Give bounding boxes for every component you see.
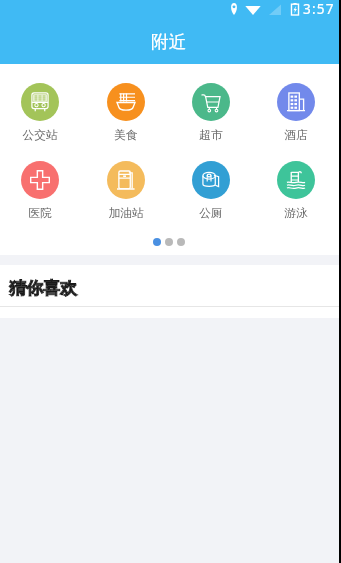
staticText: 游泳 (284, 206, 308, 221)
staticText: 酒店 (284, 128, 308, 143)
button[interactable]: 医院 (0, 161, 83, 221)
staticText: 加油站 (108, 206, 144, 221)
button[interactable]: Page 3 (177, 238, 185, 246)
button[interactable]: Page 2 (165, 238, 173, 246)
staticText: 医院 (28, 206, 52, 221)
staticText: 超市 (199, 128, 223, 143)
button[interactable]: 公交站 (0, 83, 83, 143)
button[interactable]: 公厕 (168, 161, 253, 221)
button[interactable]: 酒店 (253, 83, 338, 143)
staticText: 公交站 (22, 128, 58, 143)
button[interactable]: 美食 (83, 83, 168, 143)
button[interactable]: 游泳 (253, 161, 338, 221)
staticText: 猜你喜欢 (9, 278, 77, 299)
staticText: 3:57 (303, 0, 335, 18)
staticText: 猜你喜欢 (9, 278, 77, 299)
button[interactable]: 加油站 (83, 161, 168, 221)
button[interactable]: 超市 (168, 83, 253, 143)
staticText: 美食 (114, 128, 138, 143)
staticText: 附近 (151, 31, 186, 53)
button[interactable]: Page 1 (153, 238, 161, 246)
staticText: 公厕 (199, 206, 223, 221)
